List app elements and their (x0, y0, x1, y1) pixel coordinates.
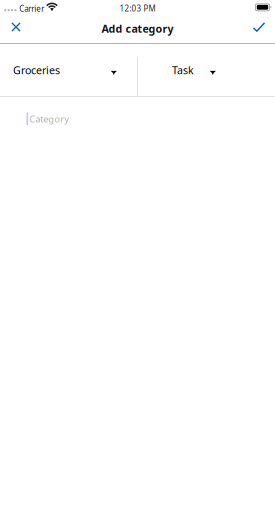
staticText: Category (29, 113, 69, 125)
staticText: Carrier (19, 3, 44, 14)
button[interactable]: Close (0, 17, 32, 43)
staticText: Groceries (13, 63, 60, 77)
button[interactable]: Category (0, 97, 275, 137)
button[interactable]: Task (138, 44, 275, 96)
staticText: Task (172, 63, 194, 77)
button[interactable]: Groceries (0, 44, 137, 96)
button[interactable]: Save (243, 17, 275, 43)
staticText: Add category (101, 21, 173, 36)
staticText: 12:03 PM (119, 3, 155, 14)
